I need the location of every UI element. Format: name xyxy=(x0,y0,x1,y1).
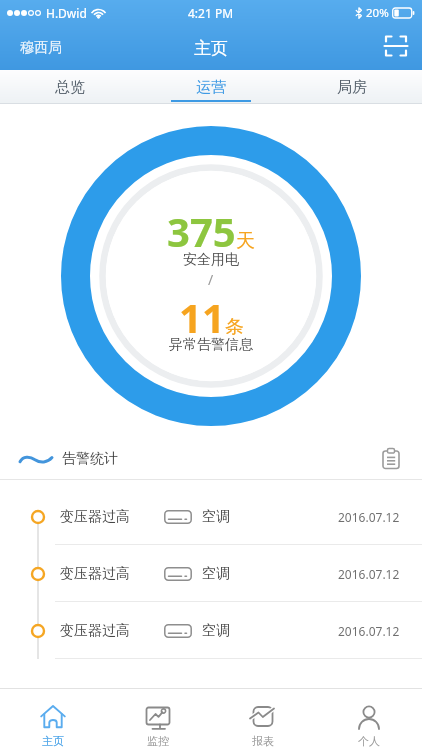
staticText: 2016.07.12 xyxy=(338,623,400,639)
button[interactable] xyxy=(382,32,410,60)
button[interactable]: 运营 xyxy=(140,70,281,104)
staticText: 告警统计 xyxy=(62,450,118,468)
staticText: 报表 xyxy=(252,734,274,748)
staticText: 变压器过高 xyxy=(60,565,130,583)
staticText: 穆西局 xyxy=(20,39,62,57)
staticText: 20% xyxy=(366,5,389,21)
staticText: 变压器过高 xyxy=(60,508,130,526)
staticText: 主页 xyxy=(194,38,228,59)
staticText: H.Dwid xyxy=(46,5,87,21)
staticText: 主页 xyxy=(42,734,64,748)
button[interactable]: 总览 xyxy=(0,70,140,104)
button[interactable]: 变压器过高 xyxy=(0,488,422,545)
staticText: 变压器过高 xyxy=(60,622,130,640)
button[interactable]: 监控 xyxy=(105,689,210,750)
staticText: 监控 xyxy=(147,734,169,748)
staticText: 空调 xyxy=(202,622,230,640)
button[interactable]: 局房 xyxy=(281,70,422,104)
button[interactable]: 主页 xyxy=(0,689,105,750)
button[interactable]: 变压器过高 xyxy=(0,545,422,602)
button[interactable]: 个人 xyxy=(316,689,422,750)
staticText: 4:21 PM xyxy=(188,5,234,21)
staticText: 2016.07.12 xyxy=(338,509,400,525)
staticText: 375 xyxy=(167,204,236,258)
staticText: 个人 xyxy=(358,734,380,748)
staticText: 异常告警信息 xyxy=(169,336,253,354)
staticText: 天 xyxy=(236,229,255,253)
staticText: 2016.07.12 xyxy=(338,566,400,582)
staticText: 空调 xyxy=(202,565,230,583)
staticText: 安全用电 xyxy=(183,251,239,269)
staticText: 空调 xyxy=(202,508,230,526)
staticText: / xyxy=(208,270,214,289)
staticText: 条 xyxy=(225,315,244,339)
staticText: 局房 xyxy=(337,78,367,97)
button[interactable]: 报表 xyxy=(210,689,316,750)
staticText: 11 xyxy=(179,290,225,344)
staticText: 运营 xyxy=(196,78,226,97)
button[interactable]: 变压器过高 xyxy=(0,602,422,659)
button[interactable]: 穆西局 xyxy=(20,39,62,57)
staticText: 总览 xyxy=(55,78,85,97)
button[interactable]: 告警统计 xyxy=(0,437,422,480)
